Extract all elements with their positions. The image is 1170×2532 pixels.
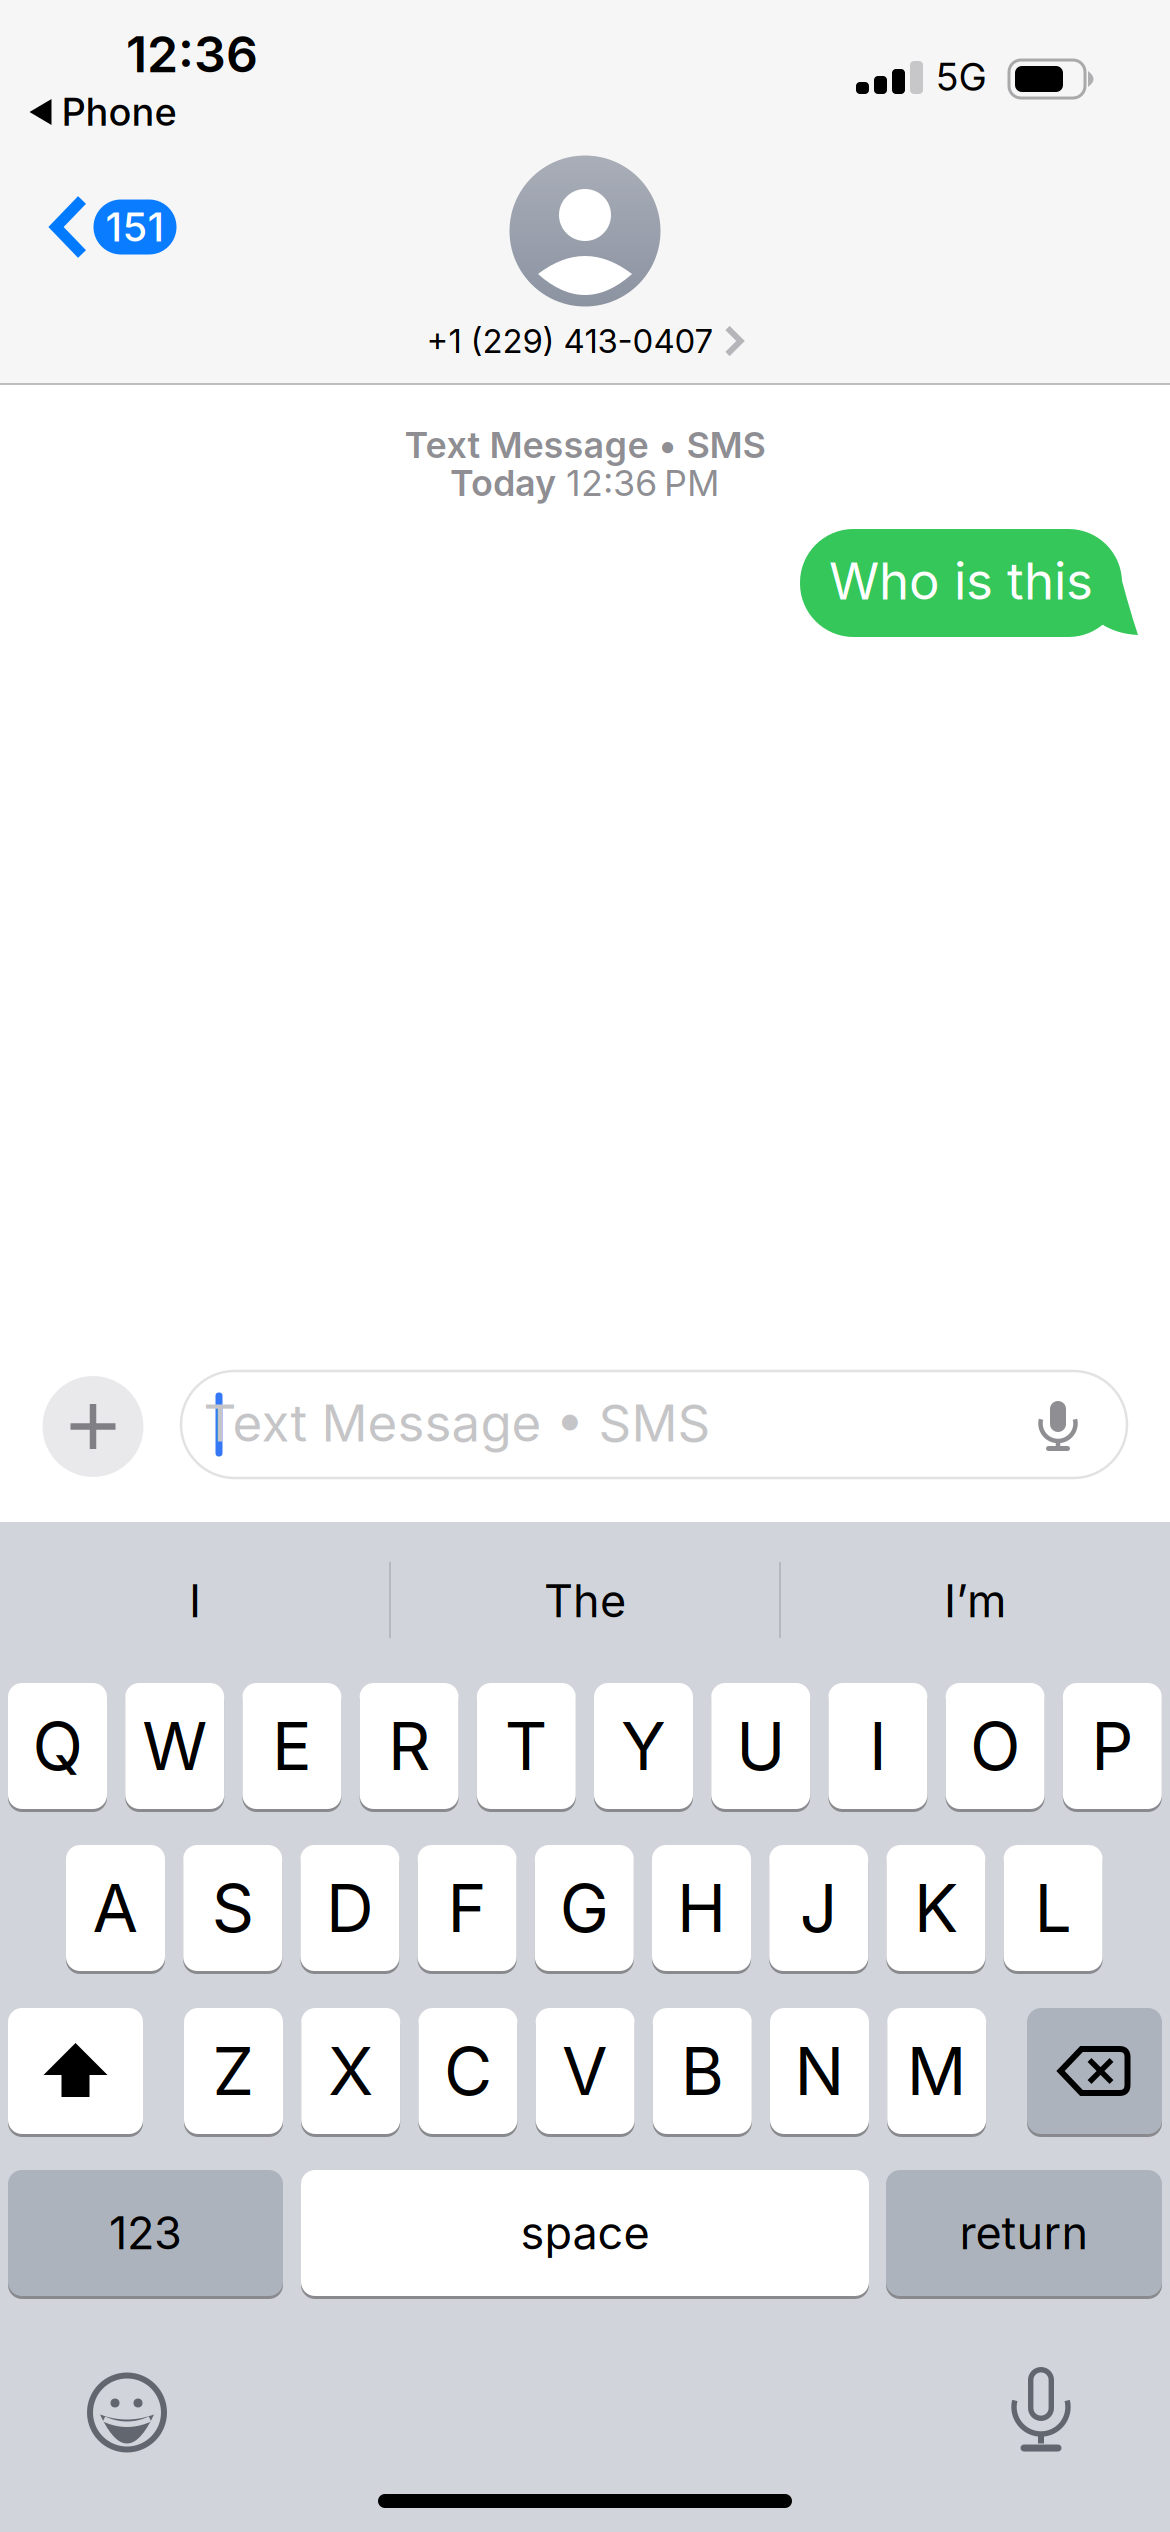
button[interactable]: Z (184, 2006, 283, 2135)
staticText: U (736, 1707, 785, 1785)
button[interactable]: C (418, 2006, 517, 2135)
button[interactable]: T (477, 1681, 576, 1810)
button[interactable]: L (1004, 1843, 1103, 1972)
staticText: The (544, 1574, 626, 1628)
staticText: I (869, 1707, 887, 1785)
button[interactable] (8, 2006, 143, 2135)
button[interactable]: space (301, 2168, 869, 2297)
button[interactable]: I (828, 1681, 927, 1810)
staticText: E (272, 1707, 312, 1785)
button[interactable] (1027, 2006, 1162, 2135)
button[interactable]: W (125, 1681, 224, 1810)
staticText: G (560, 1869, 609, 1947)
staticText: Who is this (829, 551, 1093, 611)
staticText: 123 (109, 2206, 182, 2260)
staticText: 5G (935, 55, 986, 99)
button[interactable]: S (183, 1843, 282, 1972)
button[interactable]: The (395, 1541, 775, 1661)
button[interactable]: I (5, 1541, 385, 1661)
staticText: M (907, 2032, 967, 2110)
button[interactable]: A (66, 1843, 165, 1972)
button[interactable]: O (946, 1681, 1045, 1810)
button[interactable]: return (886, 2168, 1162, 2297)
staticText: R (388, 1707, 430, 1785)
staticText: W (142, 1707, 207, 1785)
staticText: O (970, 1707, 1020, 1785)
staticText: P (1091, 1707, 1133, 1785)
staticText: Z (212, 2032, 254, 2110)
staticText: I’m (944, 1574, 1006, 1628)
staticText: Text Message • SMS (203, 1393, 710, 1453)
staticText: space (520, 2206, 649, 2260)
staticText: 12:36 (126, 24, 258, 83)
staticText: Y (621, 1707, 666, 1785)
staticText: F (448, 1869, 487, 1947)
button[interactable] (509, 155, 661, 307)
staticText: J (800, 1869, 838, 1947)
staticText: Text Message (404, 424, 648, 466)
staticText: C (444, 2032, 492, 2110)
staticText: A (92, 1869, 138, 1947)
staticText: Q (32, 1707, 82, 1785)
staticText: Phone (61, 90, 176, 134)
button[interactable] (42, 1376, 143, 1477)
staticText: T (505, 1707, 548, 1785)
staticText: V (562, 2032, 608, 2110)
button[interactable]: M (887, 2006, 986, 2135)
button[interactable]: D (300, 1843, 399, 1972)
button[interactable]: P (1063, 1681, 1162, 1810)
staticText: H (677, 1869, 726, 1947)
button[interactable]: J (769, 1843, 868, 1972)
staticText: 12:36 PM (566, 462, 720, 504)
staticText: X (328, 2032, 373, 2110)
button[interactable] (1013, 2364, 1069, 2452)
button[interactable]: Phone (29, 90, 176, 134)
button[interactable]: E (242, 1681, 341, 1810)
button[interactable]: X (301, 2006, 400, 2135)
button[interactable]: +1 (229) 413-0407 (426, 321, 743, 360)
button[interactable]: Y (594, 1681, 693, 1810)
button[interactable] (85, 2370, 169, 2454)
staticText: S (212, 1869, 254, 1947)
button[interactable]: N (770, 2006, 869, 2135)
staticText: K (914, 1869, 958, 1947)
staticText: N (794, 2032, 844, 2110)
staticText: SMS (686, 424, 765, 466)
button[interactable]: H (652, 1843, 751, 1972)
button[interactable]: K (886, 1843, 985, 1972)
staticText: D (326, 1869, 374, 1947)
staticText: return (959, 2206, 1088, 2260)
staticText: +1 (229) 413-0407 (426, 321, 713, 360)
staticText: Today (450, 462, 556, 504)
button[interactable]: G (535, 1843, 634, 1972)
staticText: L (1035, 1869, 1072, 1947)
staticText: I (189, 1574, 201, 1628)
button[interactable]: R (360, 1681, 459, 1810)
staticText: • (658, 424, 676, 466)
button[interactable]: 151 (49, 195, 179, 259)
button[interactable]: U (711, 1681, 810, 1810)
staticText: 151 (105, 203, 164, 251)
button[interactable]: Text Message • SMS (181, 1371, 1127, 1478)
button[interactable]: Q (8, 1681, 107, 1810)
button[interactable]: V (536, 2006, 635, 2135)
button[interactable]: I’m (785, 1541, 1165, 1661)
button[interactable]: 123 (8, 2168, 283, 2297)
button[interactable]: F (418, 1843, 517, 1972)
button[interactable]: B (653, 2006, 752, 2135)
staticText: B (681, 2032, 724, 2110)
